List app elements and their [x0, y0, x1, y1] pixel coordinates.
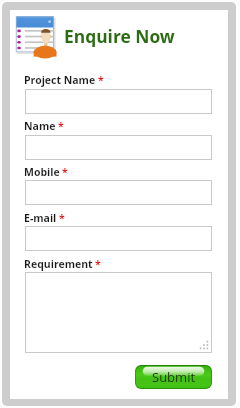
button[interactable] — [25, 272, 212, 353]
button[interactable]: Enquire Now — [64, 24, 175, 48]
staticText: Project Name — [24, 73, 96, 87]
other: Enquiry form — [14, 14, 60, 60]
staticText: * — [95, 257, 101, 271]
staticText: * — [58, 119, 64, 133]
button[interactable] — [25, 180, 212, 205]
staticText: E-mail — [24, 211, 57, 225]
button[interactable]: Submit — [135, 365, 212, 389]
button[interactable] — [25, 135, 212, 160]
staticText: Requirement — [24, 257, 93, 271]
staticText: * — [98, 73, 104, 87]
staticText: Name — [24, 119, 56, 133]
staticText: Submit — [152, 368, 196, 386]
button[interactable] — [25, 89, 212, 114]
staticText: Mobile — [24, 165, 60, 179]
staticText: Enquire Now — [64, 24, 175, 48]
staticText: * — [62, 165, 68, 179]
staticText: * — [59, 211, 65, 225]
button[interactable] — [25, 226, 212, 251]
